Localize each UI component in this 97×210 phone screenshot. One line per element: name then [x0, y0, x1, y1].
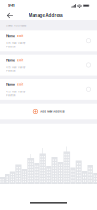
button[interactable]: Home: [0, 55, 97, 76]
staticText: Home: [6, 34, 15, 38]
staticText: Edit: [17, 34, 23, 38]
staticText: Saved Addresses: [6, 24, 26, 27]
staticText: Edit: [17, 59, 23, 62]
staticText: Home: [6, 83, 15, 87]
staticText: Pelerton: [6, 45, 15, 48]
staticText: 473 Hall Valley: [6, 42, 25, 45]
staticText: Pelerton: [6, 69, 15, 72]
staticText: Manage Address: [28, 13, 62, 18]
button[interactable]: Home: [0, 79, 97, 100]
button[interactable]: Home: [0, 30, 97, 51]
staticText: Edit: [17, 83, 23, 86]
staticText: 473 Hall Valley: [6, 90, 25, 93]
staticText: Home: [6, 58, 15, 62]
staticText: Add New Address: [40, 110, 64, 113]
button[interactable]: Back: [5, 11, 15, 20]
staticText: Pelerton: [6, 94, 15, 97]
button[interactable]: Add New Address: [0, 104, 97, 119]
staticText: 473 Hall Valley: [6, 66, 25, 69]
staticText: 9:41: [8, 3, 15, 8]
